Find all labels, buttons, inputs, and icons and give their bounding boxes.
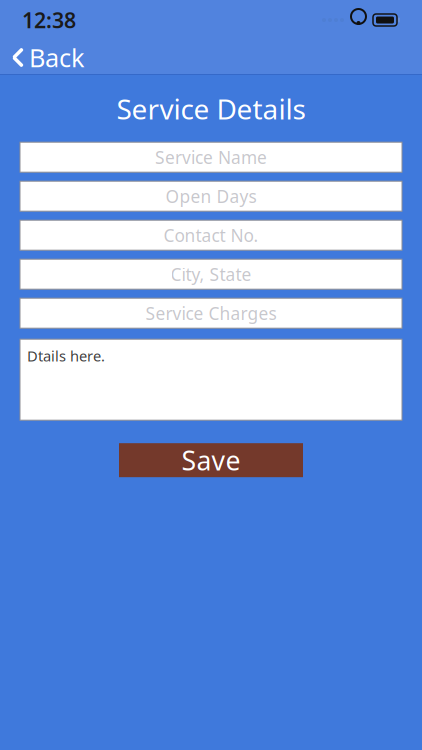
staticText: Back [29, 41, 85, 74]
staticText: Service Name [155, 146, 267, 169]
staticText: Service Charges [145, 302, 276, 325]
staticText: Save [181, 442, 240, 478]
button[interactable]: Back [0, 40, 99, 75]
staticText: 12:38 [22, 6, 76, 34]
button[interactable]: Save [119, 443, 303, 477]
staticText: Dtails here. [27, 346, 105, 366]
staticText: Open Days [165, 185, 256, 208]
staticText: Service Details [116, 90, 305, 127]
staticText: City, State [170, 263, 251, 286]
staticText: Contact No. [163, 224, 258, 247]
